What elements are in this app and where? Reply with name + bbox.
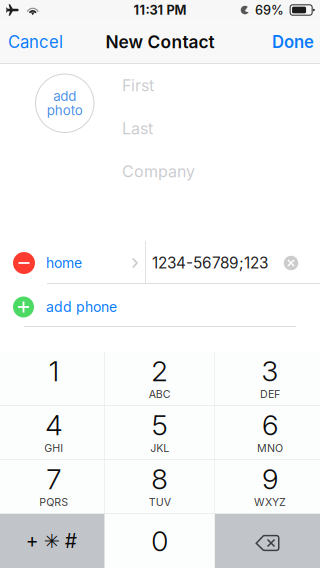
button[interactable]: Last [0,107,320,150]
staticText: New Contact [105,31,214,52]
button[interactable]: Clear text [278,246,304,280]
button[interactable]: Company [0,150,320,193]
staticText: Cancel [8,32,63,52]
button[interactable]: 0 [105,514,214,568]
staticText: 0 [151,524,168,558]
button[interactable]: Delete [215,514,320,568]
button[interactable]: 7 [0,460,104,514]
staticText: 11:31 PM [133,2,186,18]
staticText: + ✳ # [26,529,77,553]
staticText: Done [272,32,314,52]
staticText: JKL [150,441,169,454]
button[interactable]: 4 [0,406,104,460]
button[interactable]: 9 [215,460,320,514]
button[interactable]: 8 [105,460,214,514]
button[interactable]: Cancel [0,20,70,64]
staticText: 69% [255,2,284,18]
staticText: 5 [152,408,168,442]
staticText: 3 [261,354,278,388]
staticText: Last [122,119,153,138]
staticText: 7 [46,462,61,496]
button[interactable]: 6 [215,406,320,460]
staticText: 9 [262,462,278,496]
staticText: First [122,76,154,95]
staticText: 1 [49,354,59,388]
button[interactable]: add phone [0,285,320,329]
staticText: ABC [149,387,171,400]
staticText: 2 [151,354,168,388]
button[interactable]: First [0,64,320,107]
staticText: home [46,254,82,271]
staticText: TUV [149,495,171,508]
staticText: Company [122,162,195,181]
button[interactable]: Add photo [35,74,94,132]
staticText: add [53,88,76,104]
button[interactable]: home [0,241,145,285]
button[interactable]: 5 [105,406,214,460]
button[interactable]: 3 [215,352,320,406]
staticText: 8 [151,462,168,496]
staticText: photo [47,102,83,118]
staticText: add phone [46,298,117,315]
staticText: 6 [262,408,278,442]
staticText: PQRS [39,495,68,508]
button[interactable]: Done [264,20,320,64]
staticText: MNO [257,441,283,454]
staticText: DEF [260,387,280,400]
staticText: GHI [44,441,63,454]
staticText: 4 [45,408,62,442]
button[interactable]: 2 [105,352,214,406]
staticText: 1234-56789;123 [152,254,268,272]
button[interactable]: 1 [0,352,104,406]
button[interactable]: Plus, star, hash [0,514,104,568]
staticText: WXYZ [254,495,286,508]
